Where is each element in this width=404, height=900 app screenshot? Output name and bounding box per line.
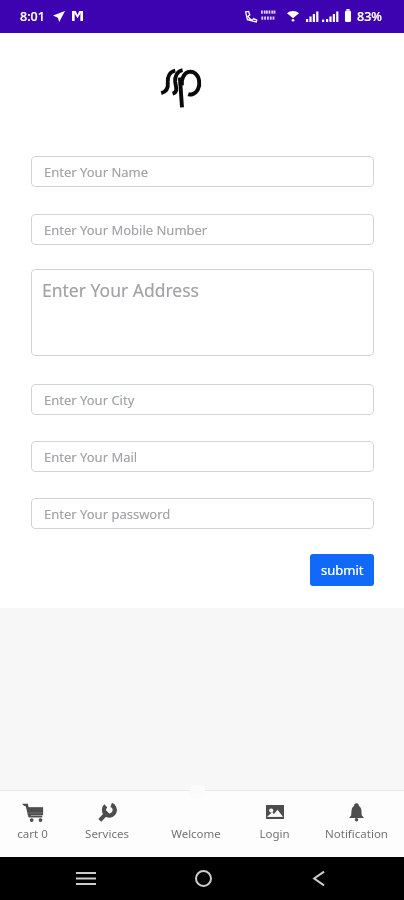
button[interactable]: Enter Your Mobile Number xyxy=(31,214,374,245)
staticText: Enter Your City xyxy=(44,391,135,409)
button[interactable]: Notification xyxy=(316,792,396,856)
button[interactable]: submit xyxy=(310,554,374,586)
staticText: Notification xyxy=(325,826,388,842)
staticText: Services xyxy=(85,826,129,842)
staticText: submit xyxy=(321,561,364,579)
button[interactable]: Enter Your password xyxy=(31,498,374,529)
button[interactable]: Enter Your Mail xyxy=(31,441,374,472)
staticText: cart 0 xyxy=(17,826,48,842)
button[interactable]: Enter Your City xyxy=(31,384,374,415)
staticText: Enter Your Name xyxy=(44,163,149,181)
button[interactable]: Back xyxy=(291,857,347,900)
button[interactable]: Enter Your Address xyxy=(31,269,374,356)
button[interactable]: Login xyxy=(234,792,314,856)
staticText: 83% xyxy=(357,8,382,25)
button[interactable]: Services xyxy=(67,792,147,856)
staticText: Enter Your Mail xyxy=(44,448,138,466)
staticText: Enter Your password xyxy=(44,505,171,523)
button[interactable]: Recents xyxy=(58,857,114,900)
staticText: Welcome xyxy=(171,826,221,842)
button[interactable]: Welcome xyxy=(156,792,236,856)
staticText: 8:01 xyxy=(20,8,45,25)
button[interactable]: Home xyxy=(175,857,231,900)
button[interactable]: cart 0 xyxy=(0,792,72,856)
staticText: Login xyxy=(259,826,290,842)
staticText: Enter Your Address xyxy=(42,278,199,302)
button[interactable]: Enter Your Name xyxy=(31,156,374,187)
staticText: Enter Your Mobile Number xyxy=(44,221,208,239)
